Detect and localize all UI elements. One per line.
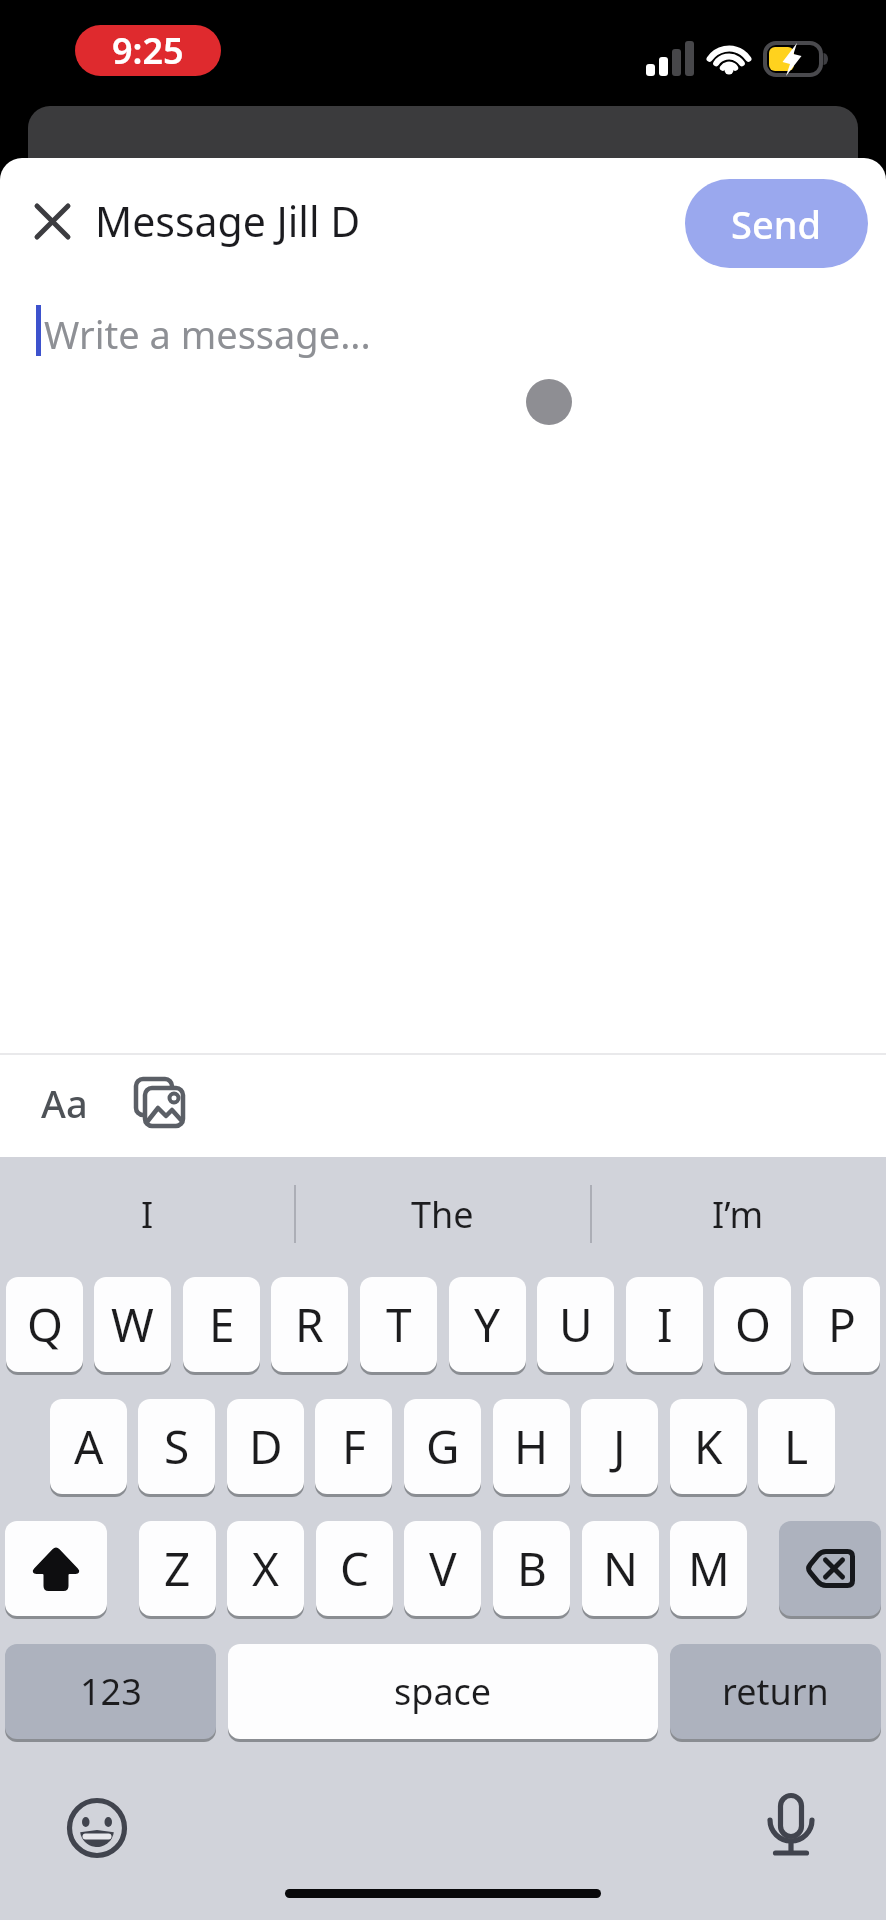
button[interactable]: T [360, 1277, 437, 1372]
button[interactable]: U [537, 1277, 614, 1372]
staticText: W [111, 1293, 154, 1356]
staticText: S [164, 1415, 190, 1478]
staticText: Send [731, 198, 822, 250]
staticText: I’m [712, 1190, 764, 1239]
button[interactable] [22, 191, 82, 251]
button[interactable]: M [670, 1521, 747, 1616]
staticText: I [657, 1293, 673, 1356]
staticText: H [514, 1415, 549, 1478]
staticText: return [722, 1667, 829, 1716]
staticText: 9:25 [112, 26, 184, 75]
button[interactable]: R [271, 1277, 348, 1372]
button[interactable]: X [227, 1521, 304, 1616]
button[interactable]: P [803, 1277, 880, 1372]
button[interactable]: J [581, 1399, 658, 1494]
button[interactable]: F [315, 1399, 392, 1494]
button[interactable] [779, 1521, 881, 1616]
button[interactable]: I [626, 1277, 703, 1372]
staticText: M [688, 1537, 730, 1600]
staticText: F [342, 1415, 366, 1478]
staticText: Write a message... [44, 308, 371, 360]
button[interactable]: Aa [24, 1068, 104, 1138]
button[interactable]: Z [139, 1521, 216, 1616]
button[interactable]: Y [449, 1277, 526, 1372]
button[interactable]: 123 [5, 1644, 216, 1739]
staticText: T [386, 1293, 412, 1356]
staticText: V [429, 1537, 457, 1600]
button[interactable]: A [50, 1399, 127, 1494]
button[interactable]: G [404, 1399, 481, 1494]
button[interactable]: L [758, 1399, 835, 1494]
button[interactable] [62, 1793, 132, 1863]
button[interactable]: I [0, 1177, 295, 1251]
staticText: J [613, 1415, 626, 1478]
button[interactable]: K [670, 1399, 747, 1494]
button[interactable]: W [94, 1277, 171, 1372]
button[interactable]: Send [685, 179, 868, 268]
staticText: C [340, 1537, 370, 1600]
staticText: space [394, 1667, 492, 1716]
staticText: U [559, 1293, 593, 1356]
button[interactable]: E [183, 1277, 260, 1372]
staticText: N [603, 1537, 638, 1600]
staticText: P [828, 1293, 856, 1356]
staticText: Message Jill D [95, 193, 361, 249]
button[interactable]: space [228, 1644, 658, 1739]
button[interactable]: N [582, 1521, 659, 1616]
staticText: Y [474, 1293, 501, 1356]
button[interactable] [758, 1793, 824, 1859]
button[interactable]: 9:25 [75, 25, 221, 76]
staticText: B [517, 1537, 547, 1600]
staticText: A [74, 1415, 104, 1478]
staticText: G [426, 1415, 460, 1478]
staticText: O [735, 1293, 771, 1356]
button[interactable] [5, 1521, 107, 1616]
staticText: D [249, 1415, 283, 1478]
staticText: Z [164, 1537, 191, 1600]
button[interactable]: Q [6, 1277, 83, 1372]
staticText: L [784, 1415, 809, 1478]
staticText: The [411, 1190, 474, 1239]
button[interactable]: D [227, 1399, 304, 1494]
button[interactable]: I’m [590, 1177, 885, 1251]
staticText: R [295, 1293, 324, 1356]
staticText: 123 [80, 1667, 142, 1716]
staticText: Q [27, 1293, 63, 1356]
button[interactable]: O [714, 1277, 791, 1372]
staticText: E [209, 1293, 235, 1356]
button[interactable]: H [493, 1399, 570, 1494]
staticText: Aa [41, 1077, 88, 1129]
staticText: K [694, 1415, 723, 1478]
button[interactable]: V [404, 1521, 481, 1616]
button[interactable]: S [138, 1399, 215, 1494]
button[interactable]: return [670, 1644, 881, 1739]
button[interactable]: The [295, 1177, 590, 1251]
staticText: X [252, 1537, 279, 1600]
button[interactable]: B [493, 1521, 570, 1616]
button[interactable] [120, 1068, 200, 1138]
staticText: I [141, 1190, 154, 1239]
button[interactable]: C [316, 1521, 393, 1616]
